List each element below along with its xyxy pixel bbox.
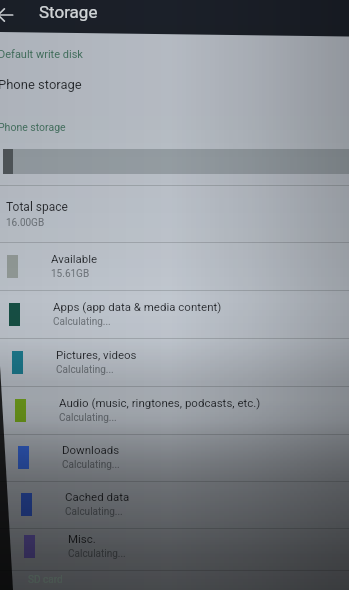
button[interactable]: Pictures, videos: [0, 340, 349, 386]
staticText: Phone storage: [0, 77, 82, 92]
button[interactable]: Back: [0, 3, 17, 27]
staticText: Cached data: [65, 490, 130, 503]
staticText: Audio (music, ringtones, podcasts, etc.): [59, 396, 261, 409]
staticText: Default write disk: [0, 48, 83, 61]
staticText: Calculating...: [59, 412, 117, 424]
button[interactable]: Misc.: [0, 524, 349, 570]
button[interactable]: Apps (app data & media content): [0, 292, 349, 338]
staticText: Phone storage: [0, 121, 66, 133]
staticText: 16.00GB: [6, 217, 45, 229]
button[interactable]: Total space: [0, 186, 349, 242]
staticText: Calculating...: [56, 364, 114, 376]
button[interactable]: Audio (music, ringtones, podcasts, etc.): [0, 388, 349, 434]
staticText: Pictures, videos: [56, 348, 137, 361]
staticText: Calculating...: [62, 459, 120, 471]
button[interactable]: Phone storage: [0, 68, 349, 102]
staticText: Calculating...: [68, 548, 126, 560]
staticText: Available: [51, 252, 98, 265]
staticText: Calculating...: [53, 316, 111, 328]
staticText: Misc.: [68, 532, 96, 545]
staticText: Apps (app data & media content): [53, 300, 222, 313]
staticText: Total space: [6, 200, 68, 214]
staticText: SD card: [28, 574, 63, 586]
staticText: 15.61GB: [51, 268, 90, 280]
staticText: Calculating...: [65, 506, 123, 518]
button[interactable]: Downloads: [0, 435, 349, 481]
staticText: Storage: [39, 2, 98, 22]
staticText: Downloads: [62, 443, 120, 456]
button[interactable]: Available: [0, 244, 349, 290]
button[interactable]: Cached data: [0, 482, 349, 528]
